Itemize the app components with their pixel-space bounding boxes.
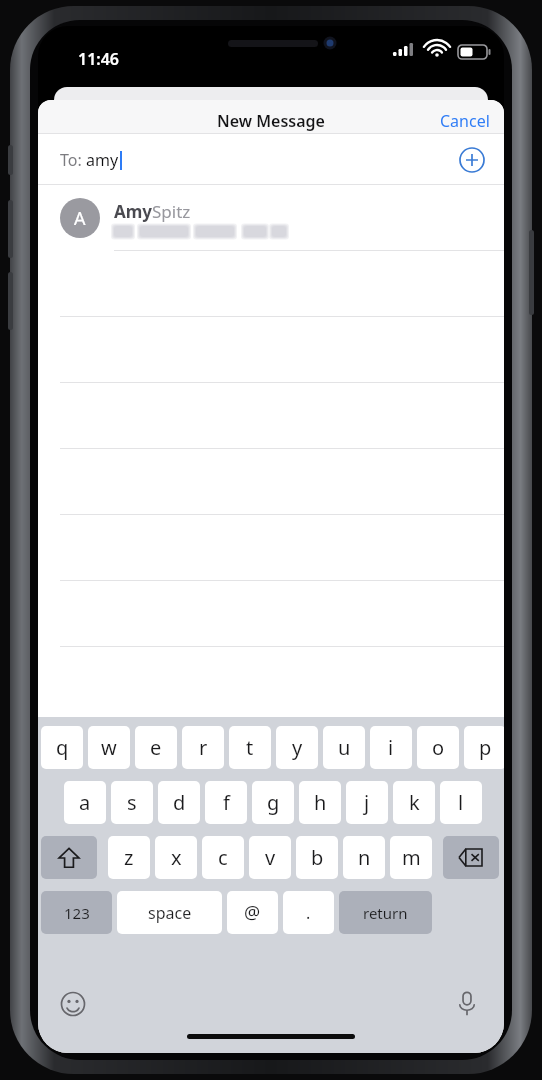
- button[interactable]: l: [440, 781, 482, 824]
- button[interactable]: i: [370, 726, 412, 769]
- staticText: Spitz: [152, 200, 191, 223]
- button[interactable]: x: [155, 836, 197, 879]
- button[interactable]: r: [182, 726, 224, 769]
- button[interactable]: Add contact: [458, 146, 486, 174]
- button[interactable]: e: [135, 726, 177, 769]
- staticText: c: [218, 844, 228, 871]
- staticText: t: [246, 734, 254, 761]
- button[interactable]: b: [296, 836, 338, 879]
- button[interactable]: Emoji: [56, 987, 90, 1021]
- button[interactable]: space: [117, 891, 222, 934]
- button[interactable]: return: [339, 891, 432, 934]
- button[interactable]: A: [38, 185, 504, 251]
- button[interactable]: c: [202, 836, 244, 879]
- staticText: New Message: [217, 110, 325, 132]
- staticText: return: [363, 903, 408, 923]
- staticText: x: [171, 844, 182, 871]
- staticText: g: [267, 789, 280, 816]
- staticText: 123: [64, 903, 90, 923]
- staticText: r: [199, 734, 208, 761]
- staticText: p: [479, 734, 492, 761]
- staticText: w: [101, 734, 117, 761]
- staticText: s: [127, 789, 137, 816]
- button[interactable]: Dictation: [450, 987, 484, 1021]
- button[interactable]: g: [252, 781, 294, 824]
- staticText: d: [173, 789, 186, 816]
- staticText: y: [292, 734, 303, 761]
- staticText: f: [223, 789, 230, 816]
- button[interactable]: .: [283, 891, 334, 934]
- staticText: e: [150, 734, 162, 761]
- staticText: o: [432, 734, 445, 761]
- staticText: Cancel: [440, 110, 490, 132]
- staticText: k: [409, 789, 420, 816]
- button[interactable]: 123: [41, 891, 112, 934]
- button[interactable]: s: [111, 781, 153, 824]
- button[interactable]: w: [88, 726, 130, 769]
- button[interactable]: u: [323, 726, 365, 769]
- staticText: z: [124, 844, 134, 871]
- staticText: l: [458, 789, 464, 816]
- staticText: 11:46: [78, 48, 120, 70]
- staticText: @: [244, 900, 261, 925]
- button[interactable]: f: [205, 781, 247, 824]
- button[interactable]: o: [417, 726, 459, 769]
- button[interactable]: Shift: [41, 836, 97, 879]
- staticText: j: [364, 789, 370, 816]
- staticText: To:: [60, 149, 86, 171]
- staticText: Amy: [114, 200, 153, 223]
- staticText: amy: [86, 149, 119, 171]
- button[interactable]: m: [390, 836, 432, 879]
- staticText: h: [314, 789, 327, 816]
- button[interactable]: a: [64, 781, 106, 824]
- staticText: a: [79, 789, 91, 816]
- button[interactable]: h: [299, 781, 341, 824]
- button[interactable]: n: [343, 836, 385, 879]
- staticText: m: [402, 844, 421, 871]
- button[interactable]: Backspace: [443, 836, 499, 879]
- staticText: b: [311, 844, 324, 871]
- staticText: q: [56, 734, 69, 761]
- button[interactable]: d: [158, 781, 200, 824]
- staticText: u: [338, 734, 351, 761]
- button[interactable]: j: [346, 781, 388, 824]
- staticText: A: [74, 206, 86, 231]
- button[interactable]: z: [108, 836, 150, 879]
- staticText: n: [358, 844, 371, 871]
- button[interactable]: v: [249, 836, 291, 879]
- other: Shift: [58, 847, 80, 869]
- button[interactable]: k: [393, 781, 435, 824]
- button[interactable]: p: [464, 726, 504, 769]
- button[interactable]: @: [227, 891, 278, 934]
- staticText: v: [265, 844, 276, 871]
- other: Backspace: [458, 848, 484, 867]
- button[interactable]: To:: [38, 134, 504, 185]
- button[interactable]: Cancel: [426, 104, 504, 138]
- button[interactable]: t: [229, 726, 271, 769]
- staticText: i: [388, 734, 394, 761]
- button[interactable]: y: [276, 726, 318, 769]
- staticText: .: [306, 902, 311, 924]
- button[interactable]: q: [41, 726, 83, 769]
- staticText: space: [148, 902, 192, 924]
